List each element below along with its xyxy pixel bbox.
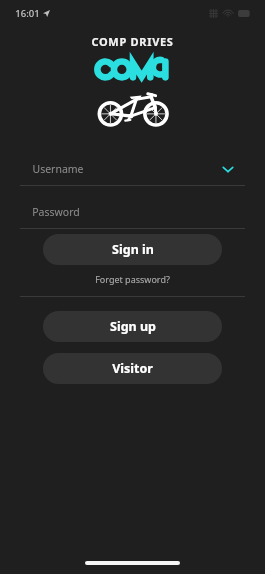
button[interactable]: Sign up <box>43 311 222 342</box>
button[interactable]: Username <box>20 152 245 186</box>
staticText: Visitor <box>112 360 153 377</box>
button[interactable]: Password <box>20 195 245 229</box>
staticText: Forget password? <box>95 273 170 285</box>
staticText: Username <box>32 162 84 176</box>
button[interactable]: Forget password? <box>89 271 176 287</box>
staticText: COMP DRIVES <box>91 34 174 49</box>
button[interactable]: Show saved usernames <box>221 162 235 176</box>
button[interactable]: Sign in <box>43 234 222 265</box>
staticText: Sign in <box>112 241 154 258</box>
staticText: Sign up <box>110 318 156 335</box>
staticText: Password <box>32 205 80 219</box>
staticText: 16:01 <box>15 7 40 20</box>
button[interactable]: Visitor <box>43 353 222 384</box>
